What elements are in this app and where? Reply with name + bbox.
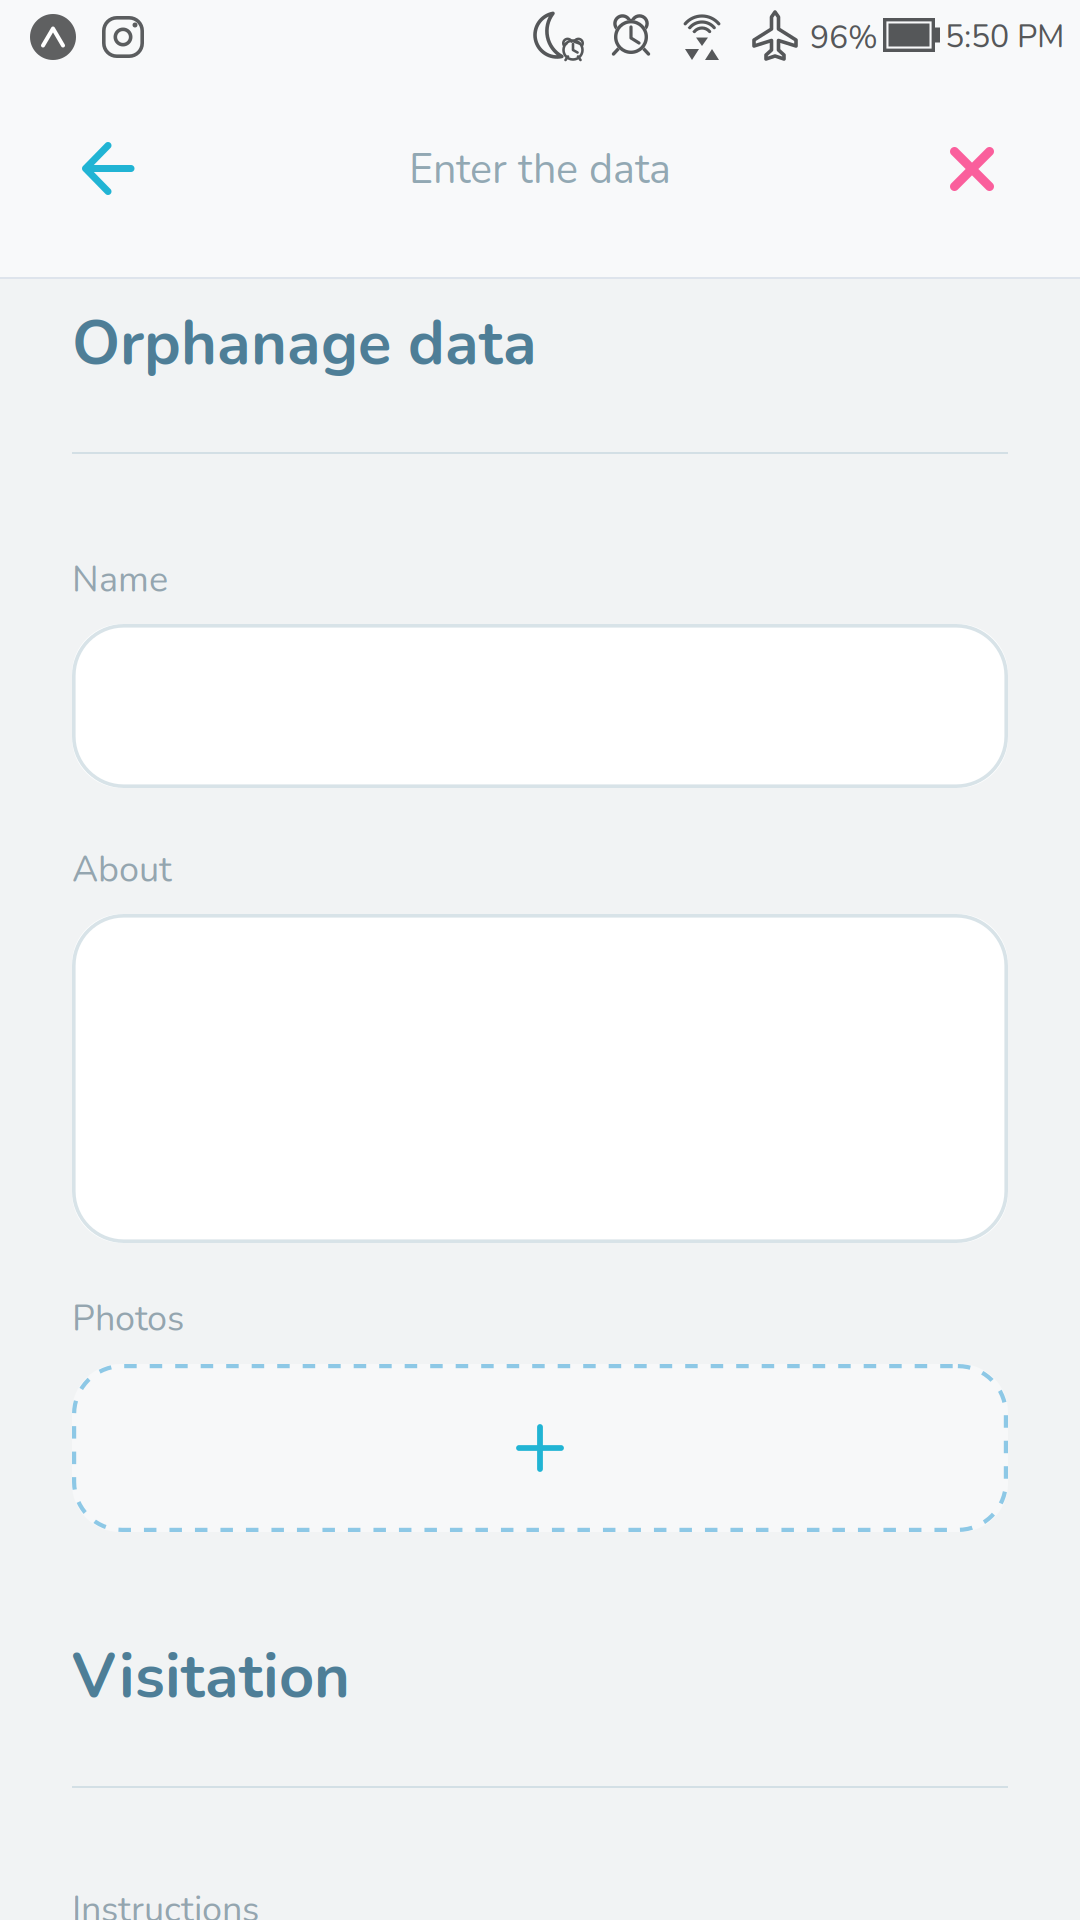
staticText: Orphanage data — [72, 302, 537, 386]
staticText: About — [72, 845, 172, 894]
button[interactable]: Close — [907, 104, 1037, 234]
staticText: 96% — [810, 16, 878, 60]
staticText: Photos — [72, 1294, 184, 1343]
button[interactable]: Back — [34, 104, 182, 234]
button[interactable]: Add photos — [72, 1364, 1008, 1532]
staticText: Name — [72, 555, 168, 604]
staticText: 5:50 PM — [945, 15, 1064, 59]
staticText: Instructions — [72, 1885, 259, 1920]
staticText: Visitation — [72, 1635, 350, 1719]
staticText: Enter the data — [409, 141, 671, 198]
